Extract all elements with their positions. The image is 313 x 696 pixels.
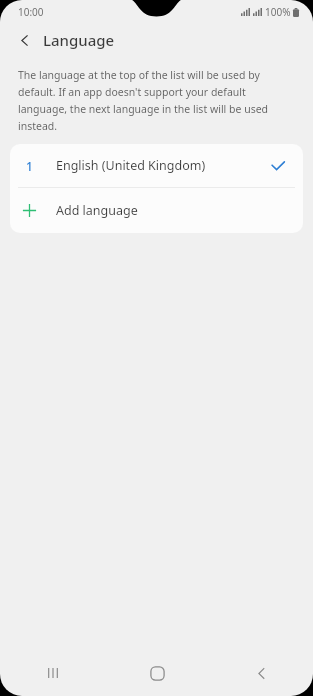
staticText: 10:00 [18, 5, 44, 19]
staticText: Add language [56, 202, 138, 219]
staticText: The language at the top of the list will… [18, 68, 295, 133]
staticText: 100% [265, 5, 291, 19]
button[interactable]: Home [105, 650, 209, 696]
staticText: 1 [26, 158, 33, 174]
button[interactable]: Back [209, 650, 313, 696]
staticText: English (United Kingdom) [56, 157, 206, 174]
button[interactable]: 1 [10, 144, 303, 187]
staticText: Language [43, 30, 115, 50]
button[interactable]: Add language [10, 188, 303, 233]
button[interactable]: Back [11, 27, 37, 53]
button[interactable]: Recent apps [0, 650, 105, 696]
